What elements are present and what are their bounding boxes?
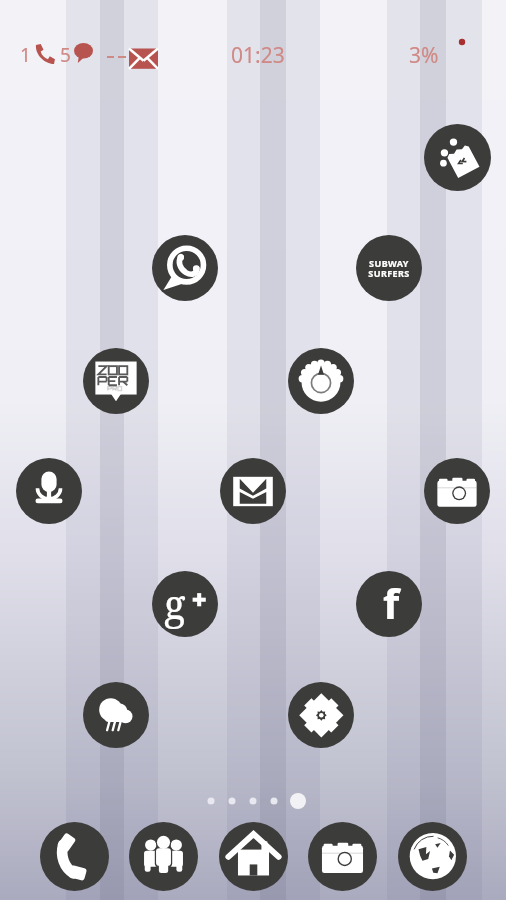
button[interactable]: Facebook (356, 571, 422, 637)
button[interactable]: Home (219, 822, 288, 891)
button[interactable]: Voice Search (16, 458, 82, 524)
staticText: SUBWAY SURFERS (368, 257, 410, 280)
staticText: g (164, 576, 186, 630)
button[interactable]: Browser (398, 822, 467, 891)
button[interactable]: Weather (83, 682, 149, 748)
button[interactable]: Google Plus (152, 571, 218, 637)
staticText: 01:23 (231, 41, 285, 70)
staticText: 5 (60, 42, 71, 68)
button[interactable]: Gmail (220, 458, 286, 524)
staticText: 3% (409, 41, 439, 70)
button[interactable]: Zooper Pro (83, 348, 149, 414)
button[interactable]: Contacts (129, 822, 198, 891)
button[interactable]: Settings (288, 682, 354, 748)
button[interactable]: WhatsApp (152, 235, 218, 301)
button[interactable]: Camera (308, 822, 377, 891)
button[interactable]: Phone (40, 822, 109, 891)
button[interactable]: Subway Surfers (356, 235, 422, 301)
staticText: 1 (20, 42, 31, 68)
button[interactable]: Quotes (424, 124, 491, 191)
button[interactable]: Camera (424, 458, 490, 524)
button[interactable]: Clock (288, 348, 354, 414)
staticText: f (383, 574, 400, 631)
